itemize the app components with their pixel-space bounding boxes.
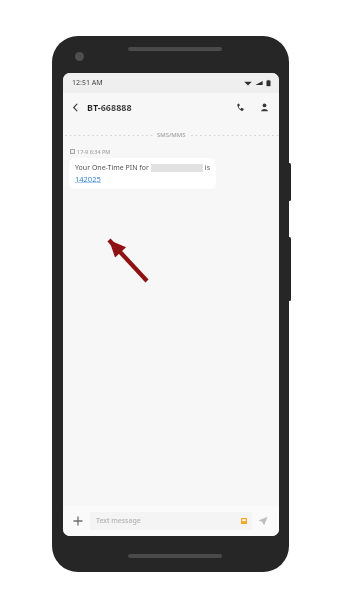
button[interactable]: Contact details [253,94,276,120]
button[interactable]: Text message [90,512,252,530]
button[interactable]: Your One-Time PIN for [69,158,216,189]
button[interactable]: SIM selection [236,513,252,529]
button[interactable]: 142025 [75,174,101,184]
staticText: 17-9 6:34 PM [77,148,111,155]
button[interactable]: Back [63,95,87,119]
staticText: is [203,163,210,173]
staticText: BT-668888 [87,101,227,113]
staticText: SMS/MMS [157,131,186,139]
staticText: 12:51 AM [72,78,103,88]
staticText: Text message [96,516,236,526]
staticText: Your One-Time PIN for [75,163,151,173]
button[interactable]: Call [227,94,253,120]
button[interactable]: Send [252,510,274,532]
button[interactable]: Add attachment [68,511,88,531]
